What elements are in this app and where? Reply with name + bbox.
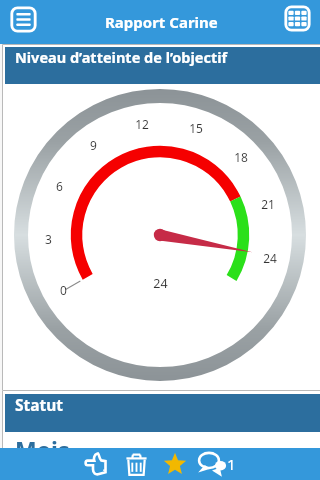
staticText: Statut bbox=[15, 394, 64, 415]
button[interactable]: Menu bbox=[10, 6, 37, 33]
button[interactable]: Comments bbox=[197, 448, 236, 480]
staticText: 12 bbox=[135, 116, 149, 132]
staticText: 6 bbox=[56, 178, 63, 194]
staticText: 15 bbox=[189, 120, 203, 136]
staticText: 18 bbox=[234, 149, 248, 165]
staticText: Rapport Carine bbox=[105, 12, 218, 32]
button[interactable]: Favorite bbox=[159, 448, 191, 480]
button[interactable]: Like bbox=[80, 448, 112, 480]
staticText: 0 bbox=[60, 282, 67, 298]
staticText: 24 bbox=[263, 250, 277, 266]
staticText: 1 bbox=[227, 454, 236, 474]
button[interactable]: Grid view bbox=[284, 5, 311, 32]
staticText: Niveau d’atteinte de l’objectif bbox=[15, 47, 228, 67]
staticText: 9 bbox=[90, 137, 97, 153]
staticText: 3 bbox=[45, 231, 52, 247]
staticText: 21 bbox=[261, 196, 275, 212]
staticText: Mois bbox=[15, 434, 70, 448]
button[interactable]: Delete bbox=[120, 448, 152, 480]
staticText: 24 bbox=[153, 275, 168, 292]
